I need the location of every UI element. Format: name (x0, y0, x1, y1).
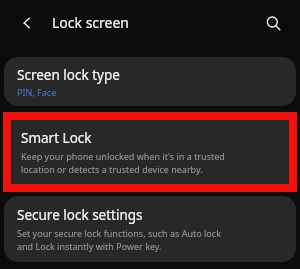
staticText: Smart Lock (21, 129, 92, 147)
button[interactable]: Search (258, 8, 288, 38)
button[interactable]: Back (14, 10, 40, 36)
staticText: Lock screen (52, 13, 130, 32)
staticText: location or detects a trusted device nea… (21, 163, 203, 175)
staticText: Screen lock type (17, 66, 120, 84)
staticText: Keep your phone unlocked when it's in a … (21, 150, 225, 162)
button[interactable]: Secure lock settings (4, 196, 296, 262)
staticText: and Lock instantly with Power key. (17, 240, 162, 252)
staticText: PIN, Face (17, 86, 57, 98)
staticText: Secure lock settings (17, 206, 143, 224)
button[interactable]: Screen lock type (4, 57, 296, 106)
button[interactable]: Smart Lock (11, 120, 289, 184)
staticText: Set your secure lock functions, such as … (17, 227, 221, 239)
